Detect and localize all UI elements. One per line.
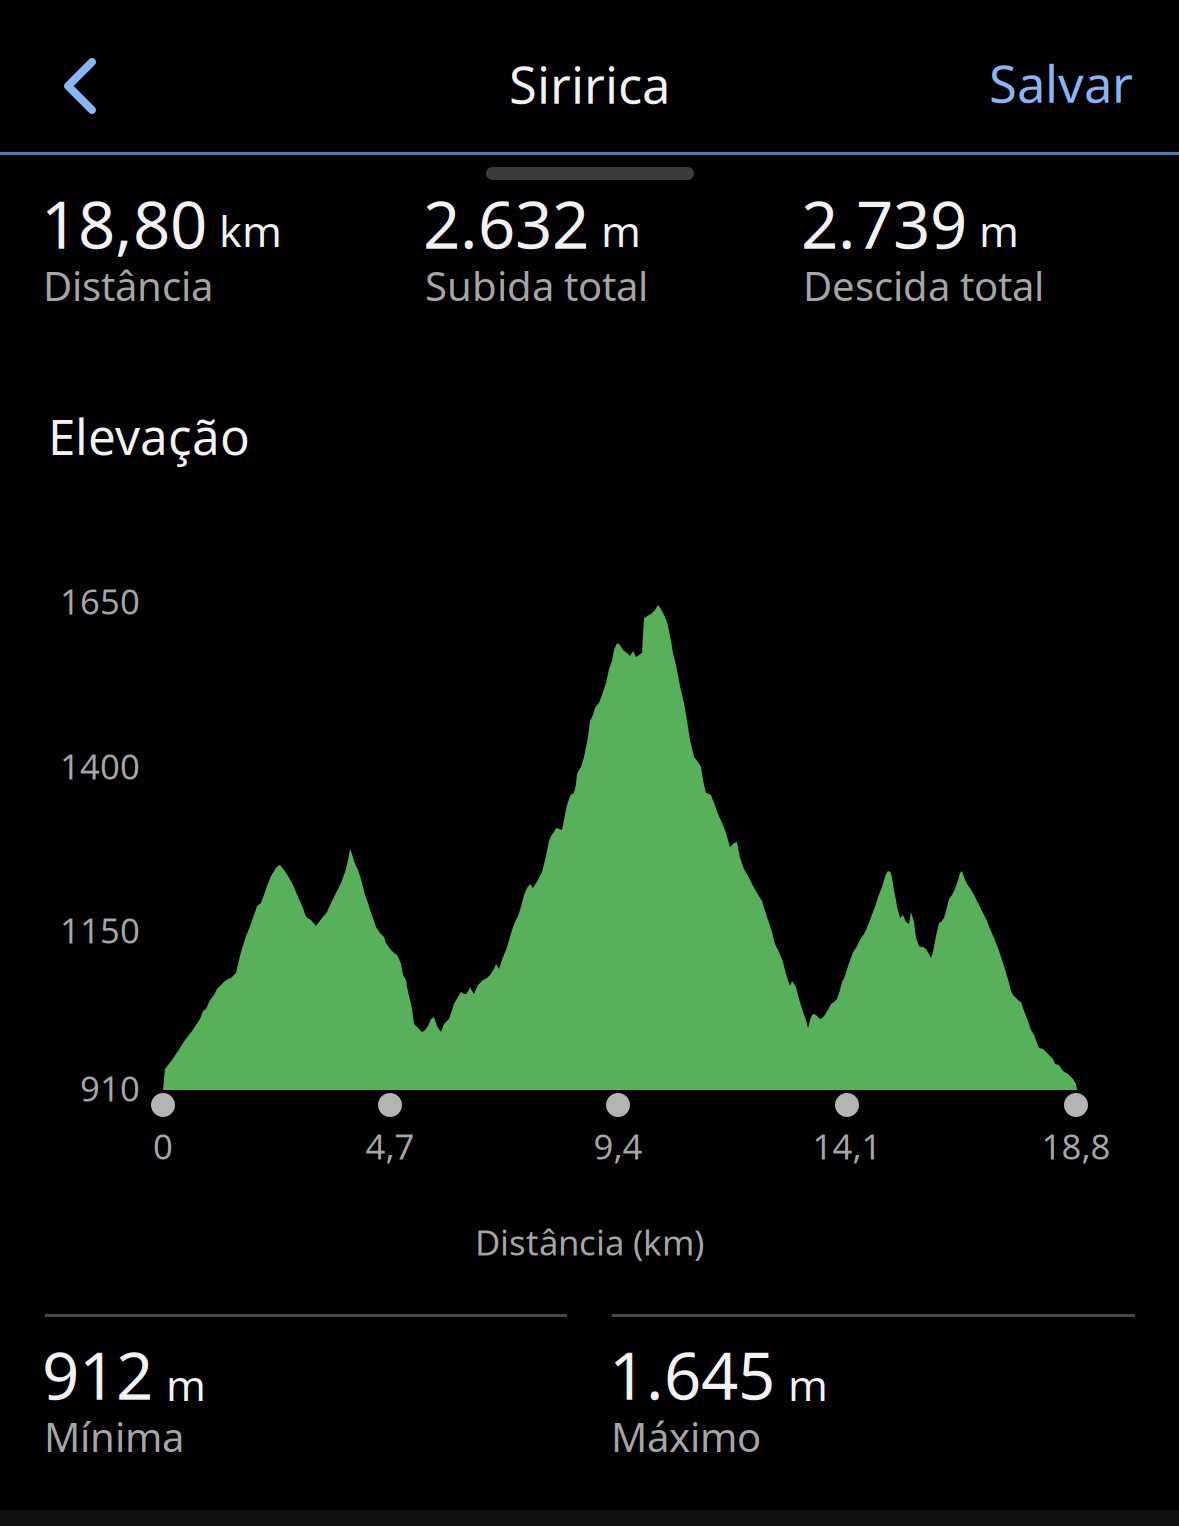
staticText: Descida total <box>803 259 1044 312</box>
staticText: 1400 <box>60 743 140 789</box>
staticText: 910 <box>80 1065 140 1111</box>
staticText: 9,4 <box>593 1123 642 1169</box>
staticText: m <box>979 202 1019 259</box>
button[interactable]: Back <box>0 0 170 152</box>
staticText: Mínima <box>44 1410 184 1463</box>
staticText: 14,1 <box>812 1123 881 1169</box>
staticText: m <box>601 202 641 259</box>
button[interactable]: Salvar <box>903 0 1179 166</box>
staticText: 2.632 <box>423 180 589 267</box>
staticText: Salvar <box>989 49 1133 117</box>
staticText: Distância (km) <box>475 1219 704 1265</box>
staticText: 0 <box>153 1123 173 1169</box>
staticText: Siririca <box>509 50 670 118</box>
staticText: km <box>219 202 282 259</box>
staticText: 2.739 <box>801 180 967 267</box>
staticText: 1150 <box>60 907 140 953</box>
staticText: Distância <box>43 259 213 312</box>
staticText: 4,7 <box>365 1123 414 1169</box>
staticText: Elevação <box>48 403 250 468</box>
staticText: 18,80 <box>41 180 207 267</box>
staticText: Subida total <box>425 259 648 312</box>
staticText: m <box>788 1356 828 1413</box>
staticText: Máximo <box>611 1410 761 1463</box>
staticText: m <box>166 1356 206 1413</box>
staticText: 18,8 <box>1041 1123 1110 1169</box>
staticText: 1650 <box>60 578 140 624</box>
staticText: 912 <box>42 1331 153 1418</box>
staticText: 1.645 <box>609 1331 775 1418</box>
